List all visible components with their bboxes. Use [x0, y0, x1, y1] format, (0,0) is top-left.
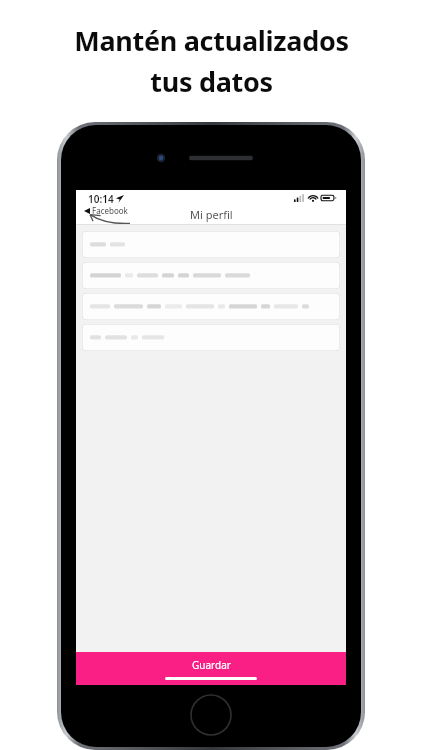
- button[interactable]: [82, 293, 340, 320]
- button[interactable]: Facebook: [82, 204, 130, 217]
- staticText: 10:14: [88, 192, 114, 206]
- staticText: Facebook: [92, 205, 128, 216]
- button[interactable]: Guardar: [76, 652, 346, 685]
- staticText: Mi perfil: [190, 207, 233, 222]
- staticText: tus datos: [150, 63, 273, 100]
- button[interactable]: [82, 231, 340, 258]
- staticText: Mantén actualizados: [74, 22, 349, 59]
- other: Home: [189, 693, 233, 737]
- button[interactable]: [82, 324, 340, 351]
- button[interactable]: [82, 262, 340, 289]
- staticText: Guardar: [192, 658, 231, 672]
